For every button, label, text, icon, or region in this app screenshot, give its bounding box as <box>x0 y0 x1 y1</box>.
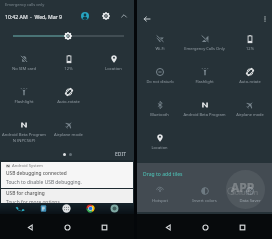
staticText: Do not disturb <box>146 79 174 84</box>
button[interactable]: Do not disturb <box>137 65 182 98</box>
staticText: Android Beta Program N (NPC56P) <box>2 132 46 143</box>
button[interactable]: Home <box>60 220 74 234</box>
button[interactable] <box>182 131 227 164</box>
staticText: Touch to disable USB debugging. <box>6 179 82 186</box>
button[interactable]: USB for charging <box>1 189 133 208</box>
staticText: Emergency Calls Only <box>184 46 225 51</box>
button[interactable]: No SIM card <box>2 50 46 83</box>
staticText: Data Saver <box>239 198 261 204</box>
button[interactable]: Wi-Fi <box>137 32 182 65</box>
button[interactable]: Flashlight <box>2 83 46 116</box>
button[interactable]: Flashlight <box>182 65 227 98</box>
staticText: Emergency calls only <box>5 2 45 7</box>
staticText: Bluetooth <box>150 112 169 117</box>
staticText: Android Beta Program <box>183 112 226 117</box>
button[interactable]: Recents <box>235 220 249 234</box>
staticText: Flashlight <box>195 79 214 84</box>
staticText: 12% <box>246 46 254 51</box>
button[interactable]: Location <box>137 131 182 164</box>
button[interactable]: Android System <box>1 162 133 188</box>
staticText: 10:42 AM · Wed, Mar 9 <box>5 13 63 20</box>
staticText: No SIM card <box>12 66 36 72</box>
staticText: Solution <box>231 188 259 198</box>
staticText: Auto-rotate <box>57 99 80 105</box>
staticText: Drag to add tiles <box>143 171 183 178</box>
staticText: Flashlight <box>14 99 34 105</box>
staticText: USB debugging connected <box>6 170 67 177</box>
button[interactable]: 12% <box>46 50 91 83</box>
button[interactable]: Auto-rotate <box>46 83 91 116</box>
button[interactable]: More options <box>258 12 271 25</box>
button[interactable]: 12% <box>227 32 272 65</box>
staticText: Airplane mode <box>236 112 264 117</box>
button[interactable]: Hotspot <box>137 187 182 204</box>
button[interactable]: Settings <box>100 10 112 22</box>
staticText: Touch for more options. <box>6 199 62 206</box>
button[interactable]: Airplane mode <box>46 116 91 149</box>
button[interactable]: Auto-rotate <box>227 65 272 98</box>
staticText: APP <box>231 179 255 195</box>
button[interactable]: Android Beta Program <box>182 98 227 131</box>
button[interactable]: Android Beta Program N (NPC56P) <box>2 116 46 149</box>
staticText: USB for charging <box>6 190 45 197</box>
staticText: Airplane mode <box>54 132 83 138</box>
button[interactable]: Bluetooth <box>137 98 182 131</box>
button[interactable]: Data Saver <box>227 187 272 204</box>
staticText: Android System <box>12 163 43 169</box>
staticText: 12% <box>64 66 73 72</box>
button[interactable]: Location <box>91 50 136 83</box>
staticText: Hotspot <box>152 198 168 204</box>
button[interactable]: Recents <box>97 220 111 234</box>
button[interactable]: Airplane mode <box>227 98 272 131</box>
button[interactable]: Home <box>198 220 212 234</box>
staticText: EDIT <box>115 151 127 158</box>
button[interactable] <box>91 116 136 149</box>
staticText: Invert colors <box>192 198 217 204</box>
button[interactable]: User <box>79 10 91 22</box>
button[interactable]: Emergency Calls Only <box>182 32 227 65</box>
button[interactable] <box>227 131 272 164</box>
button[interactable]: Back <box>140 12 153 25</box>
button[interactable] <box>91 83 136 116</box>
staticText: Location <box>151 145 168 150</box>
button[interactable]: EDIT <box>113 149 129 160</box>
staticText: Wi-Fi <box>155 46 165 51</box>
button[interactable]: Back <box>161 220 175 234</box>
button[interactable]: Collapse <box>118 10 130 22</box>
staticText: Auto-rotate <box>239 79 261 84</box>
button[interactable]: Invert colors <box>182 187 227 204</box>
button[interactable]: Back <box>23 220 37 234</box>
staticText: Location <box>105 66 122 72</box>
